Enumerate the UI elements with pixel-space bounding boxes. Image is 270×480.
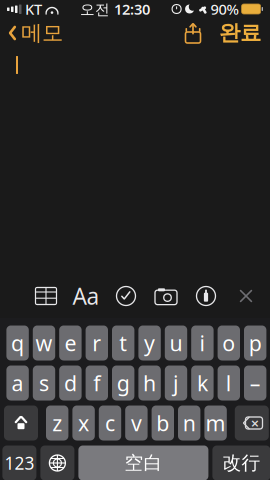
button[interactable]: c	[99, 405, 121, 440]
button[interactable]: z	[46, 405, 68, 440]
button[interactable]: q	[6, 325, 29, 360]
staticText: –	[250, 369, 261, 397]
button[interactable]: 空白	[78, 445, 208, 480]
button[interactable]: Shift	[4, 405, 38, 440]
button[interactable]: 마크업	[186, 278, 226, 314]
staticText: r	[92, 329, 101, 357]
button[interactable]: k	[191, 365, 214, 400]
staticText: b	[156, 409, 169, 437]
button[interactable]: o	[218, 325, 240, 360]
button[interactable]: w	[33, 325, 55, 360]
staticText: KT	[25, 0, 42, 19]
button[interactable]: 공유	[177, 19, 209, 47]
button[interactable]: 카메라	[146, 278, 186, 314]
staticText: s	[39, 369, 49, 397]
staticText: j	[173, 369, 179, 397]
staticText: 改行	[222, 451, 260, 474]
button[interactable]: 삭제	[235, 405, 269, 440]
staticText: 완료	[219, 20, 261, 46]
staticText: Aa	[72, 281, 99, 311]
button[interactable]: f	[86, 365, 108, 400]
staticText: t	[119, 329, 127, 357]
staticText: 오전 12:30	[80, 0, 150, 19]
staticText: 123	[4, 451, 34, 474]
staticText: 90%	[211, 0, 239, 19]
button[interactable]: t	[112, 325, 134, 360]
button[interactable]: d	[59, 365, 82, 400]
staticText: 空白	[124, 451, 162, 474]
staticText: y	[144, 329, 155, 357]
button[interactable]: 서식	[66, 278, 106, 314]
button[interactable]: r	[86, 325, 108, 360]
staticText: 메모	[21, 20, 63, 46]
button[interactable]: 표	[26, 278, 66, 314]
button[interactable]: 완료	[209, 16, 270, 50]
staticText: i	[199, 329, 205, 357]
button[interactable]: b	[152, 405, 174, 440]
staticText: w	[35, 329, 52, 357]
staticText: m	[206, 409, 226, 437]
staticText: e	[64, 329, 76, 357]
staticText: k	[197, 369, 208, 397]
button[interactable]: 123	[2, 445, 36, 480]
button[interactable]: g	[112, 365, 134, 400]
staticText: l	[226, 369, 232, 397]
button[interactable]: s	[33, 365, 55, 400]
button[interactable]: n	[178, 405, 200, 440]
staticText: u	[169, 329, 182, 357]
button[interactable]: p	[244, 325, 266, 360]
button[interactable]: l	[218, 365, 240, 400]
staticText: q	[11, 329, 24, 357]
staticText: c	[105, 409, 115, 437]
button[interactable]: m	[204, 405, 227, 440]
button[interactable]: y	[138, 325, 161, 360]
button[interactable]: –	[244, 365, 266, 400]
staticText: h	[143, 369, 156, 397]
staticText: d	[64, 369, 77, 397]
button[interactable]: 체크리스트	[106, 278, 146, 314]
button[interactable]: u	[165, 325, 187, 360]
button[interactable]: a	[6, 365, 29, 400]
staticText: o	[222, 329, 235, 357]
button[interactable]: 改行	[212, 445, 270, 480]
button[interactable]: 메모	[0, 16, 63, 50]
staticText: v	[131, 409, 142, 437]
button[interactable]: 닫기	[226, 278, 266, 314]
staticText: g	[117, 369, 130, 397]
staticText: f	[93, 369, 100, 397]
button[interactable]: 키보드 전환	[40, 445, 74, 480]
staticText: ×	[251, 413, 259, 433]
button[interactable]: v	[125, 405, 148, 440]
button[interactable]: x	[72, 405, 95, 440]
button[interactable]: e	[59, 325, 82, 360]
staticText: n	[183, 409, 196, 437]
staticText: x	[78, 409, 89, 437]
staticText: a	[12, 369, 24, 397]
button[interactable]: j	[165, 365, 187, 400]
button[interactable]: i	[191, 325, 214, 360]
button[interactable]: h	[138, 365, 161, 400]
staticText: p	[249, 329, 262, 357]
staticText: z	[52, 409, 62, 437]
